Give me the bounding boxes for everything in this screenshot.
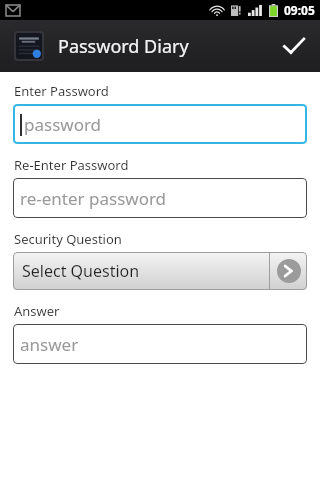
- staticText: Enter Password: [14, 82, 109, 100]
- button[interactable]: re-enter password: [13, 178, 307, 218]
- button[interactable]: Select Question: [13, 252, 307, 290]
- staticText: password: [24, 113, 102, 136]
- staticText: Re-Enter Password: [14, 156, 129, 174]
- staticText: re-enter password: [20, 187, 167, 210]
- staticText: Answer: [14, 302, 60, 320]
- button[interactable]: answer: [13, 324, 307, 364]
- button[interactable]: password: [13, 104, 307, 144]
- staticText: Password Diary: [58, 34, 189, 59]
- staticText: answer: [20, 333, 79, 356]
- staticText: Security Question: [14, 230, 122, 248]
- staticText: 09:05: [284, 2, 315, 18]
- button[interactable]: Save: [268, 20, 320, 72]
- staticText: Select Question: [22, 260, 269, 282]
